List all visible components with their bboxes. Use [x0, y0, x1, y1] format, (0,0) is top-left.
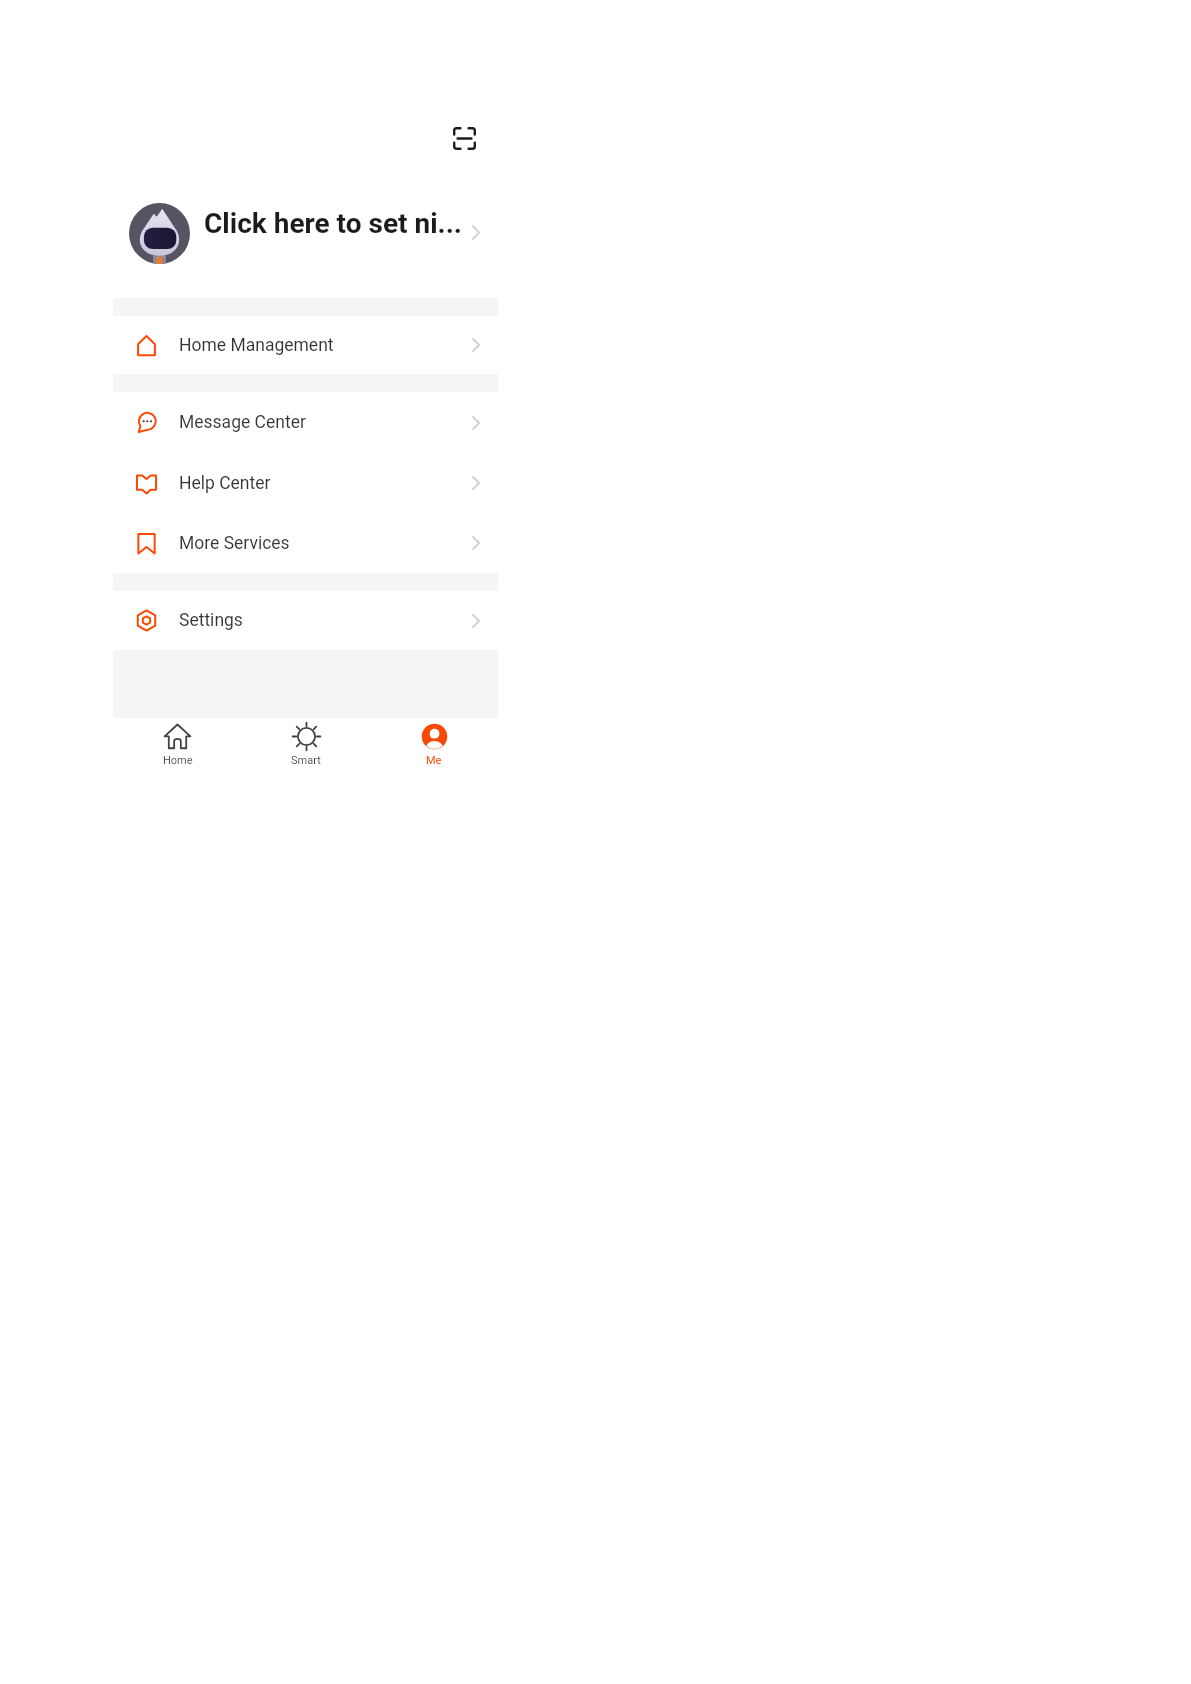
- staticText: Message Center: [179, 412, 306, 433]
- staticText: Home: [163, 754, 193, 767]
- staticText: More Services: [179, 533, 290, 554]
- button[interactable]: More Services: [113, 513, 498, 573]
- staticText: Settings: [179, 610, 243, 631]
- button[interactable]: Home Management: [113, 316, 498, 374]
- staticText: Help Center: [179, 473, 271, 494]
- button[interactable]: Message Center: [113, 392, 498, 453]
- button[interactable]: Help Center: [113, 453, 498, 513]
- staticText: Me: [426, 754, 442, 767]
- button[interactable]: Settings: [113, 591, 498, 650]
- staticText: Smart: [291, 754, 321, 767]
- button[interactable]: Home: [113, 718, 242, 770]
- staticText: Home Management: [179, 335, 334, 356]
- button[interactable]: Smart: [242, 718, 370, 770]
- staticText: Click here to set ni...: [204, 207, 463, 240]
- button[interactable]: Me: [370, 718, 498, 770]
- button[interactable]: Scan: [442, 116, 486, 160]
- button[interactable]: Click here to set ni...: [113, 175, 498, 298]
